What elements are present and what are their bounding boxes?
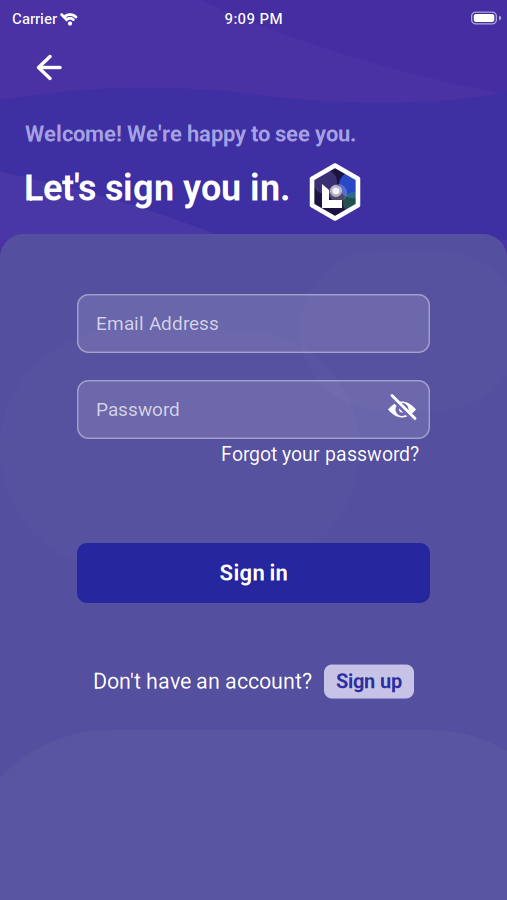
- button[interactable]: Forgot your password?: [221, 443, 419, 466]
- button[interactable]: [380, 387, 424, 431]
- staticText: Sign in: [219, 560, 287, 586]
- button[interactable]: Password: [77, 380, 430, 439]
- staticText: Sign up: [336, 670, 402, 693]
- button[interactable]: [22, 45, 66, 89]
- staticText: 9:09 PM: [224, 10, 282, 28]
- staticText: Carrier: [12, 10, 57, 28]
- staticText: Forgot your password?: [221, 443, 419, 466]
- staticText: Email Address: [96, 312, 219, 335]
- staticText: Let's sign you in.: [24, 167, 290, 209]
- staticText: Welcome! We're happy to see you.: [25, 121, 356, 147]
- button[interactable]: Sign up: [324, 664, 414, 698]
- button[interactable]: Sign in: [77, 543, 430, 603]
- button[interactable]: Email Address: [77, 294, 430, 353]
- staticText: Don't have an account?: [93, 669, 312, 694]
- staticText: Password: [96, 398, 180, 421]
